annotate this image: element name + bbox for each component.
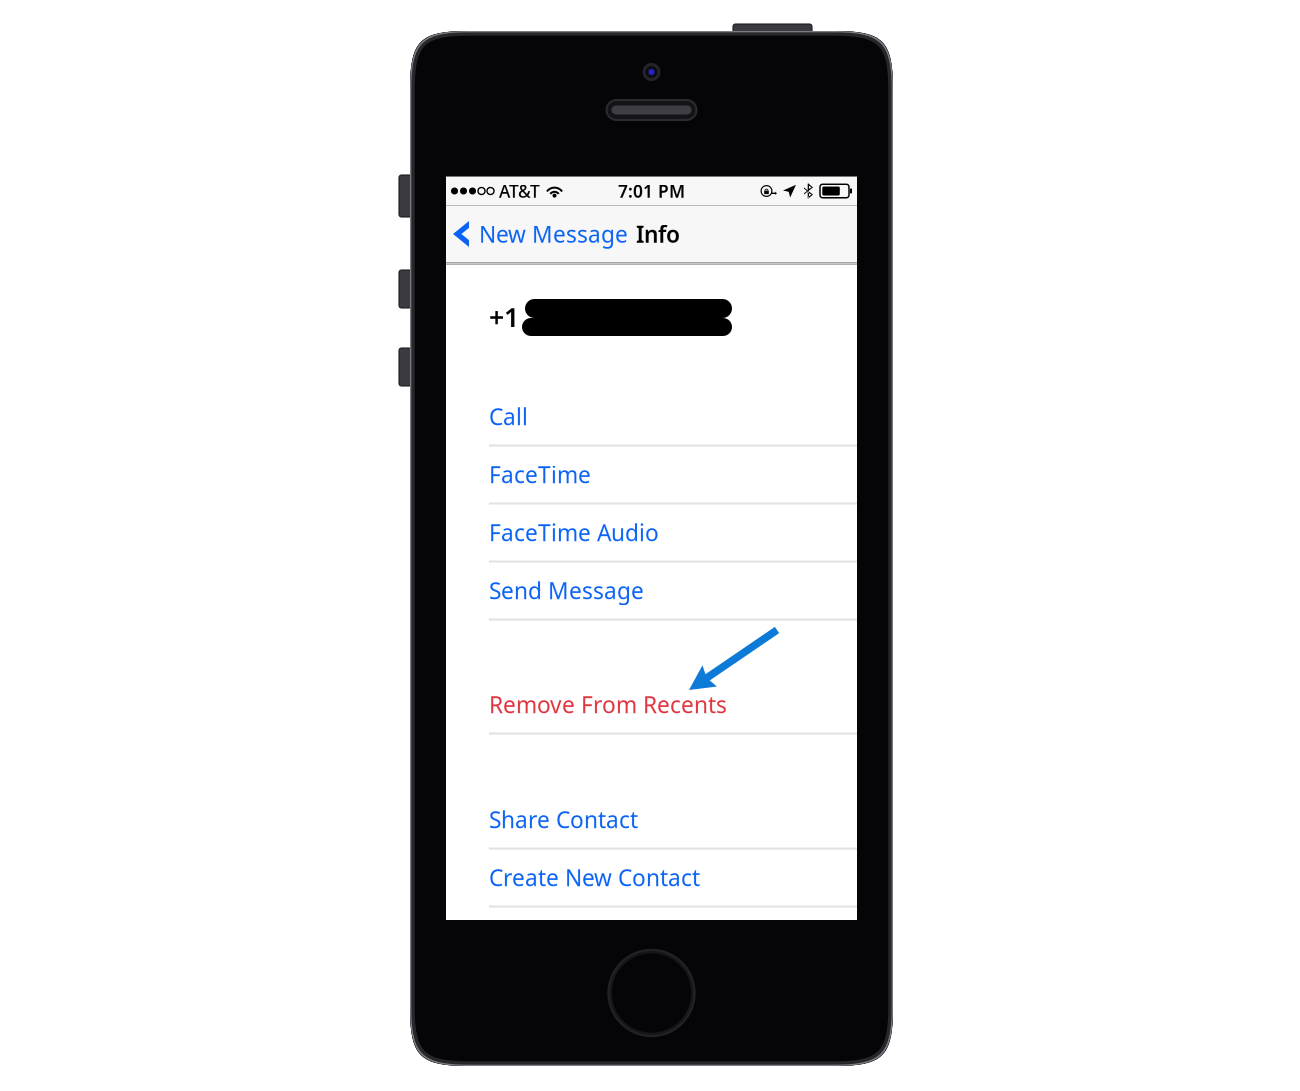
staticText: Share Contact [489, 804, 638, 834]
staticText: FaceTime [489, 459, 591, 489]
button[interactable]: FaceTime [446, 446, 857, 502]
staticText: FaceTime Audio [489, 517, 659, 547]
button[interactable]: New Message [446, 205, 628, 262]
button[interactable]: Remove From Recents [446, 676, 857, 732]
staticText: Remove From Recents [489, 689, 727, 719]
button[interactable]: Send Message [446, 562, 857, 618]
button[interactable]: Share Contact [446, 791, 857, 847]
staticText: Send Message [489, 575, 644, 605]
staticText: +1 [489, 299, 519, 335]
button[interactable]: Info [628, 205, 680, 262]
button[interactable]: Create New Contact [446, 849, 857, 905]
button[interactable]: Call [446, 388, 857, 444]
staticText: Call [489, 401, 528, 431]
staticText: Create New Contact [489, 862, 700, 892]
staticText: Info [636, 219, 680, 249]
staticText: New Message [479, 219, 628, 249]
button[interactable]: FaceTime Audio [446, 504, 857, 560]
staticText: 7:01 PM [618, 179, 685, 202]
staticText: AT&T [499, 179, 540, 202]
